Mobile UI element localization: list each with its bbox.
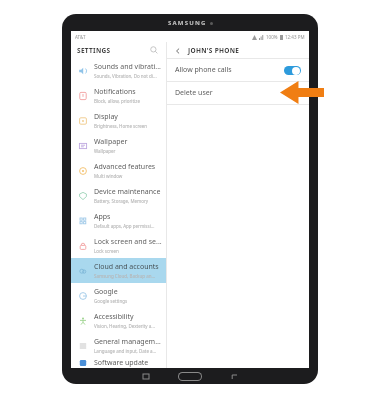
staticText: Wallpaper bbox=[94, 148, 116, 154]
button[interactable]: Home bbox=[166, 368, 214, 384]
other: Allow phone calls toggle bbox=[284, 66, 301, 75]
button[interactable]: Software update bbox=[71, 358, 166, 368]
staticText: Google bbox=[94, 287, 118, 297]
staticText: Advanced features bbox=[94, 162, 156, 172]
button[interactable]: Notifications bbox=[71, 83, 166, 108]
staticText: Delete user bbox=[175, 88, 213, 98]
staticText: Multi window bbox=[94, 173, 123, 179]
staticText: Allow phone calls bbox=[175, 65, 232, 75]
staticText: Cloud and accounts bbox=[94, 262, 159, 272]
button[interactable]: Recents bbox=[126, 368, 166, 384]
button[interactable]: Back bbox=[214, 368, 254, 384]
staticText: Google settings bbox=[94, 298, 128, 304]
staticText: Sounds, Vibration, Do not di... bbox=[94, 73, 157, 79]
staticText: Notifications bbox=[94, 87, 136, 97]
staticText: Battery, Storage, Memory bbox=[94, 198, 149, 204]
staticText: Sounds and vibrati... bbox=[94, 62, 161, 72]
button[interactable]: Search bbox=[148, 44, 160, 56]
staticText: Software update bbox=[94, 358, 149, 368]
staticText: Lock screen bbox=[94, 248, 119, 254]
button[interactable]: Cloud and accounts bbox=[71, 258, 166, 283]
staticText: Samsung Cloud, Backup an... bbox=[94, 273, 156, 279]
staticText: Language and input, Date a... bbox=[94, 348, 157, 354]
button[interactable]: Display bbox=[71, 108, 166, 133]
staticText: JOHN'S PHONE bbox=[188, 46, 240, 55]
other: Pointer bbox=[280, 81, 324, 104]
button[interactable]: Advanced features bbox=[71, 158, 166, 183]
staticText: 12:43 PM bbox=[285, 34, 305, 40]
staticText: Block, allow, prioritize bbox=[94, 98, 140, 104]
button[interactable]: Lock screen and se... bbox=[71, 233, 166, 258]
staticText: Lock screen and se... bbox=[94, 237, 162, 247]
staticText: SETTINGS bbox=[77, 46, 111, 55]
staticText: Vision, Hearing, Dexterity a... bbox=[94, 323, 155, 329]
button[interactable]: Delete user bbox=[167, 82, 309, 104]
staticText: Apps bbox=[94, 212, 111, 222]
staticText: Brightness, Home screen bbox=[94, 123, 148, 129]
staticText: Wallpaper bbox=[94, 137, 128, 147]
button[interactable]: Apps bbox=[71, 208, 166, 233]
staticText: AT&T bbox=[75, 34, 86, 40]
button[interactable]: General manageme... bbox=[71, 333, 166, 358]
staticText: Default apps, App permissi... bbox=[94, 223, 155, 229]
button[interactable]: Accessibility bbox=[71, 308, 166, 333]
staticText: Accessibility bbox=[94, 312, 134, 322]
button[interactable]: Wallpaper bbox=[71, 133, 166, 158]
staticText: 100% bbox=[266, 34, 278, 40]
staticText: Display bbox=[94, 112, 118, 122]
button[interactable]: Allow phone calls bbox=[167, 59, 309, 81]
button[interactable]: Device maintenance bbox=[71, 183, 166, 208]
button[interactable]: Back bbox=[172, 45, 183, 56]
staticText: General manageme... bbox=[94, 337, 163, 347]
button[interactable]: Sounds and vibrati... bbox=[71, 58, 166, 83]
button[interactable]: Google bbox=[71, 283, 166, 308]
staticText: SAMSUNG bbox=[168, 19, 207, 27]
staticText: Device maintenance bbox=[94, 187, 161, 197]
